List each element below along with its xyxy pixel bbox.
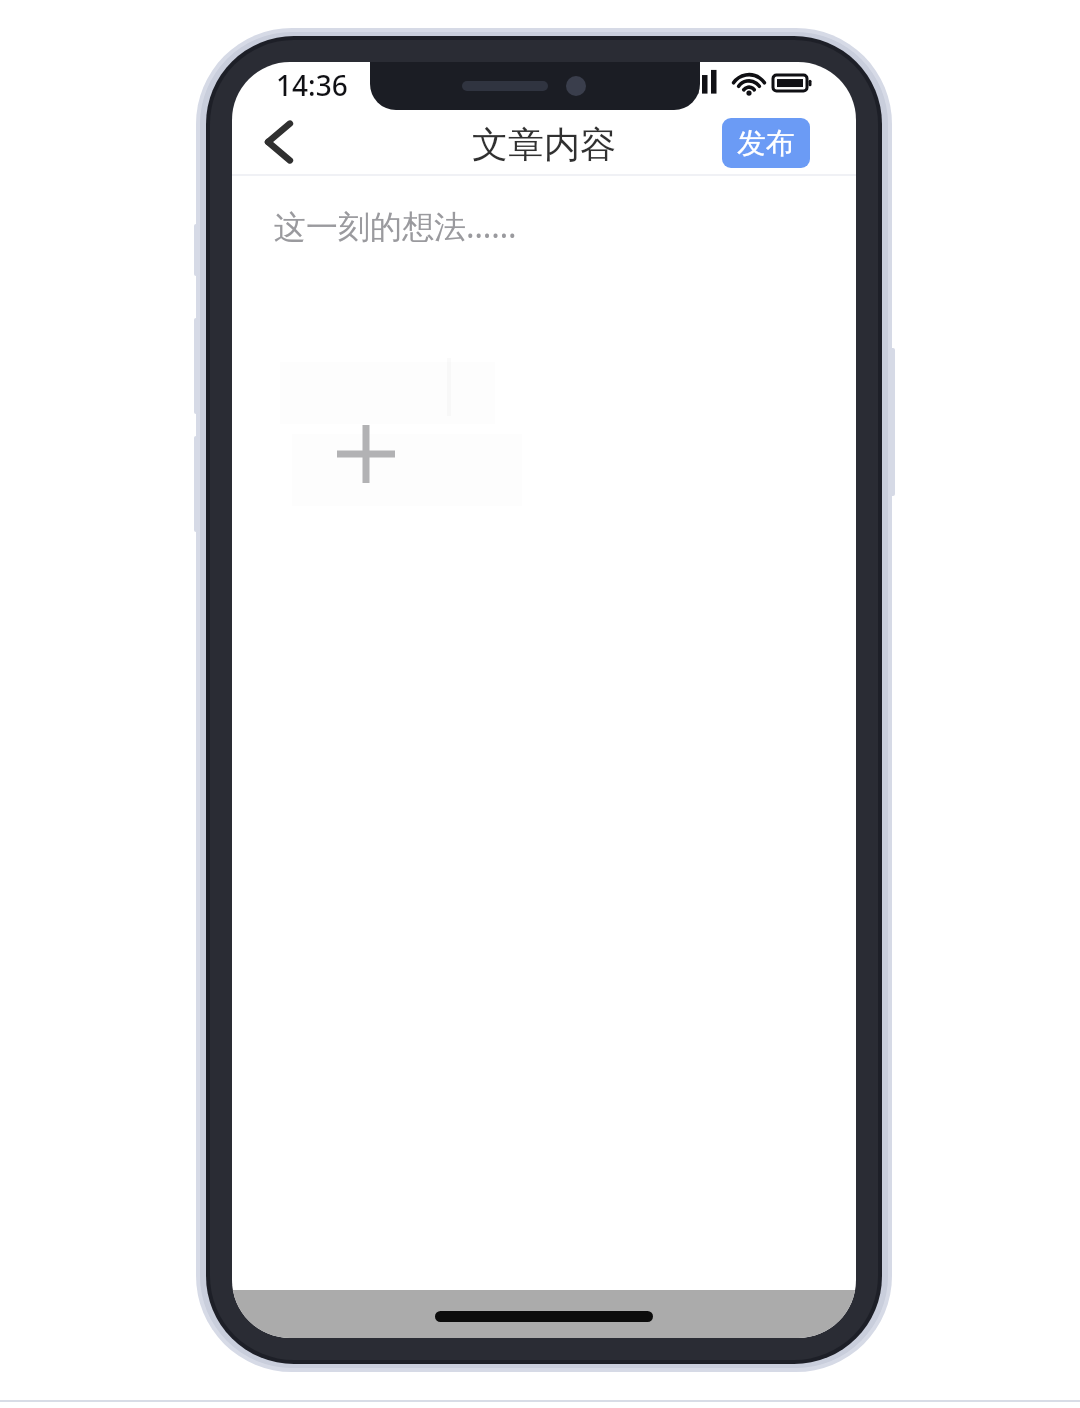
button[interactable]: Add image [302,390,430,518]
button[interactable]: 发布 [722,118,810,168]
staticText: 这一刻的想法…… [274,204,517,248]
staticText: 文章内容 [232,122,856,167]
staticText: 发布 [737,125,795,162]
staticText: 14:36 [276,66,348,104]
button[interactable]: Back [240,110,318,174]
